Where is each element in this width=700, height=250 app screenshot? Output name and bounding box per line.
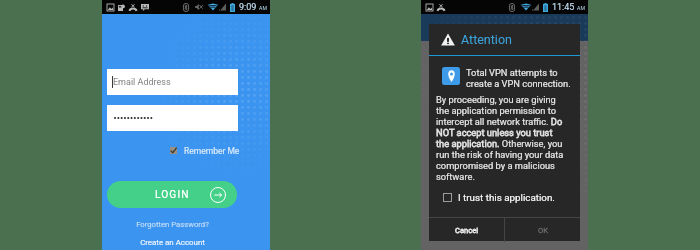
staticText: Email Address (113, 77, 171, 88)
staticText: AM (577, 5, 585, 11)
staticText: 11:45 (552, 2, 575, 13)
staticText: Forgotten Password? (136, 220, 209, 229)
staticText: By proceeding, you are giving the applic… (436, 94, 566, 182)
button[interactable]: I trust this application. (443, 188, 555, 206)
staticText: LOGIN (155, 189, 190, 201)
staticText: OK (538, 226, 548, 235)
button[interactable]: Email Address (107, 69, 238, 95)
staticText: 9:09 (239, 2, 257, 13)
button[interactable]: Cancel (429, 218, 504, 242)
button[interactable]: LOGIN (107, 181, 237, 208)
staticText: AM (259, 5, 267, 11)
staticText: Attention (461, 32, 512, 47)
staticText: I trust this application. (458, 192, 555, 203)
button[interactable] (107, 105, 238, 131)
other: Sign in (210, 187, 226, 203)
button[interactable]: Remember Me (170, 144, 240, 157)
staticText: Total VPN attempts to create a VPN conne… (466, 67, 578, 89)
button[interactable]: Create an Account (107, 236, 238, 249)
button[interactable]: Forgotten Password? (107, 218, 238, 231)
staticText: Cancel (455, 226, 479, 235)
button[interactable]: OK (505, 218, 580, 242)
staticText: Remember Me (184, 146, 240, 156)
staticText: Create an Account (140, 238, 205, 247)
